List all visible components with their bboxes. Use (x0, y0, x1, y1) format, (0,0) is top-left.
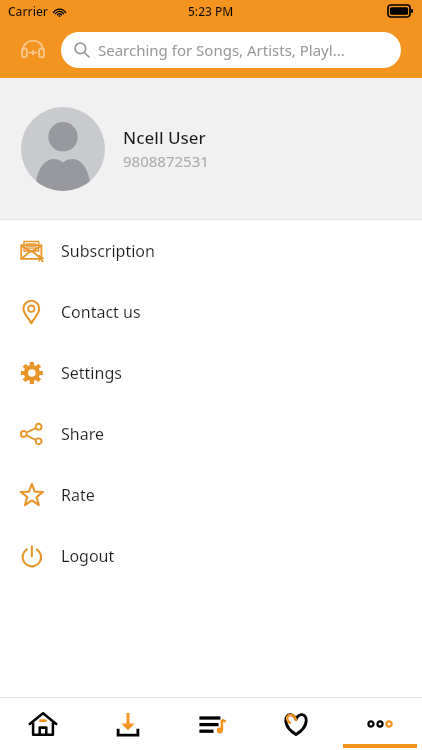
button[interactable]: Settings (0, 342, 422, 403)
button[interactable]: Favourites (254, 698, 338, 750)
button[interactable]: Logout (0, 525, 422, 586)
button[interactable]: Share (0, 403, 422, 464)
button[interactable]: Ncell User (0, 78, 422, 219)
button[interactable]: Subscription (0, 220, 422, 281)
button[interactable]: More (338, 698, 422, 750)
staticText: Settings (61, 362, 122, 384)
staticText: Carrier (8, 3, 48, 19)
button[interactable]: Contact us (0, 281, 422, 342)
button[interactable]: Headphones (16, 33, 50, 67)
staticText: Searching for Songs, Artists, Playl... (98, 40, 345, 60)
button[interactable]: Playlists (170, 698, 254, 750)
staticText: Contact us (61, 301, 141, 323)
staticText: Logout (61, 545, 115, 567)
staticText: Ncell User (123, 126, 206, 149)
button[interactable]: Downloads (85, 698, 170, 750)
staticText: 9808872531 (123, 151, 209, 171)
staticText: 5:23 PM (188, 3, 234, 19)
staticText: Share (61, 423, 104, 445)
button[interactable]: Home (0, 698, 85, 750)
staticText: Subscription (61, 240, 155, 262)
button[interactable]: Searching for Songs, Artists, Playl... (61, 32, 401, 68)
button[interactable]: Rate (0, 464, 422, 525)
staticText: Rate (61, 484, 95, 506)
